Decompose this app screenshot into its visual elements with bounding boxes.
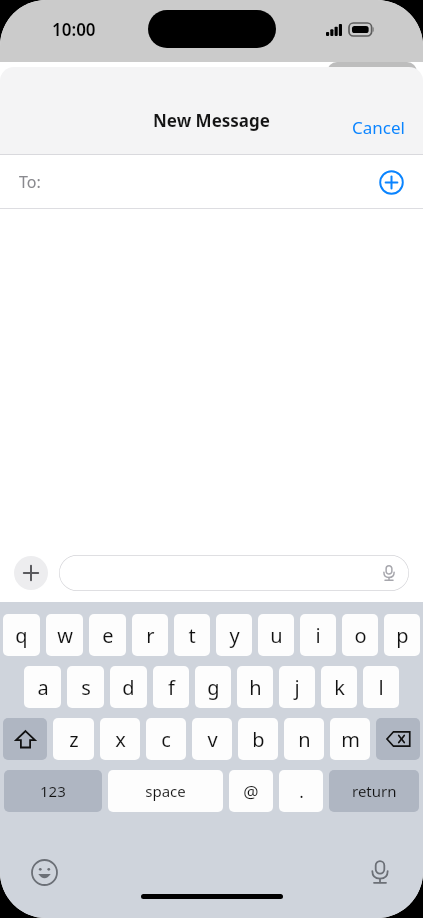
staticText: 123 bbox=[40, 781, 66, 801]
button[interactable]: Backspace bbox=[376, 718, 420, 760]
button[interactable]: y bbox=[216, 614, 252, 656]
button[interactable]: . bbox=[279, 770, 323, 812]
button[interactable]: t bbox=[174, 614, 210, 656]
button[interactable]: v bbox=[192, 718, 232, 760]
button[interactable]: n bbox=[284, 718, 324, 760]
button[interactable]: r bbox=[132, 614, 168, 656]
staticText: space bbox=[145, 781, 186, 801]
staticText: x bbox=[115, 726, 126, 753]
staticText: v bbox=[207, 726, 218, 753]
button[interactable]: Add attachment bbox=[14, 556, 48, 590]
button[interactable]: j bbox=[279, 666, 315, 708]
button[interactable]: Emoji bbox=[31, 859, 58, 886]
staticText: a bbox=[37, 674, 49, 701]
staticText: n bbox=[298, 726, 311, 753]
button[interactable]: w bbox=[46, 614, 83, 656]
staticText: r bbox=[146, 622, 155, 649]
button[interactable]: space bbox=[108, 770, 223, 812]
button[interactable]: i bbox=[300, 614, 336, 656]
staticText: f bbox=[168, 674, 175, 701]
staticText: p bbox=[396, 622, 409, 649]
button[interactable]: b bbox=[238, 718, 278, 760]
button[interactable]: o bbox=[342, 614, 378, 656]
button[interactable]: x bbox=[100, 718, 140, 760]
button[interactable]: return bbox=[329, 770, 419, 812]
button[interactable]: q bbox=[3, 614, 40, 656]
staticText: k bbox=[334, 674, 345, 701]
button[interactable]: e bbox=[89, 614, 126, 656]
staticText: @ bbox=[243, 780, 259, 803]
staticText: q bbox=[15, 622, 28, 649]
button[interactable]: f bbox=[153, 666, 189, 708]
button[interactable]: l bbox=[363, 666, 399, 708]
button[interactable]: Dictation bbox=[368, 860, 392, 884]
button[interactable]: To: bbox=[0, 155, 423, 209]
staticText: h bbox=[249, 674, 262, 701]
button[interactable]: a bbox=[24, 666, 61, 708]
button[interactable]: s bbox=[67, 666, 104, 708]
button[interactable]: g bbox=[195, 666, 231, 708]
button[interactable]: c bbox=[146, 718, 186, 760]
button[interactable]: h bbox=[237, 666, 273, 708]
staticText: d bbox=[122, 674, 135, 701]
staticText: g bbox=[207, 674, 220, 701]
staticText: 10:00 bbox=[52, 18, 96, 41]
staticText: c bbox=[161, 726, 171, 753]
button[interactable]: z bbox=[53, 718, 94, 760]
button[interactable]: m bbox=[330, 718, 370, 760]
staticText: . bbox=[299, 780, 304, 803]
staticText: z bbox=[69, 726, 79, 753]
other: Dictate bbox=[381, 565, 397, 581]
staticText: To: bbox=[19, 171, 41, 193]
staticText: s bbox=[81, 674, 91, 701]
staticText: o bbox=[354, 622, 367, 649]
staticText: e bbox=[102, 622, 114, 649]
button[interactable]: Dictate bbox=[59, 555, 409, 591]
staticText: return bbox=[352, 781, 397, 801]
staticText: m bbox=[341, 726, 360, 753]
staticText: j bbox=[294, 674, 300, 701]
staticText: New Message bbox=[153, 109, 270, 132]
staticText: i bbox=[315, 622, 321, 649]
button[interactable]: Cancel bbox=[338, 102, 423, 155]
button[interactable]: Add contact bbox=[379, 170, 404, 195]
staticText: Cancel bbox=[352, 116, 405, 139]
button[interactable]: u bbox=[258, 614, 294, 656]
staticText: b bbox=[252, 726, 265, 753]
button[interactable]: k bbox=[321, 666, 357, 708]
button[interactable]: d bbox=[110, 666, 147, 708]
staticText: u bbox=[270, 622, 283, 649]
staticText: l bbox=[378, 674, 384, 701]
button[interactable]: @ bbox=[229, 770, 273, 812]
staticText: t bbox=[188, 622, 196, 649]
staticText: y bbox=[229, 622, 240, 649]
button[interactable]: 123 bbox=[4, 770, 102, 812]
staticText: w bbox=[57, 622, 73, 649]
button[interactable]: Shift bbox=[3, 718, 47, 760]
button[interactable]: p bbox=[384, 614, 420, 656]
